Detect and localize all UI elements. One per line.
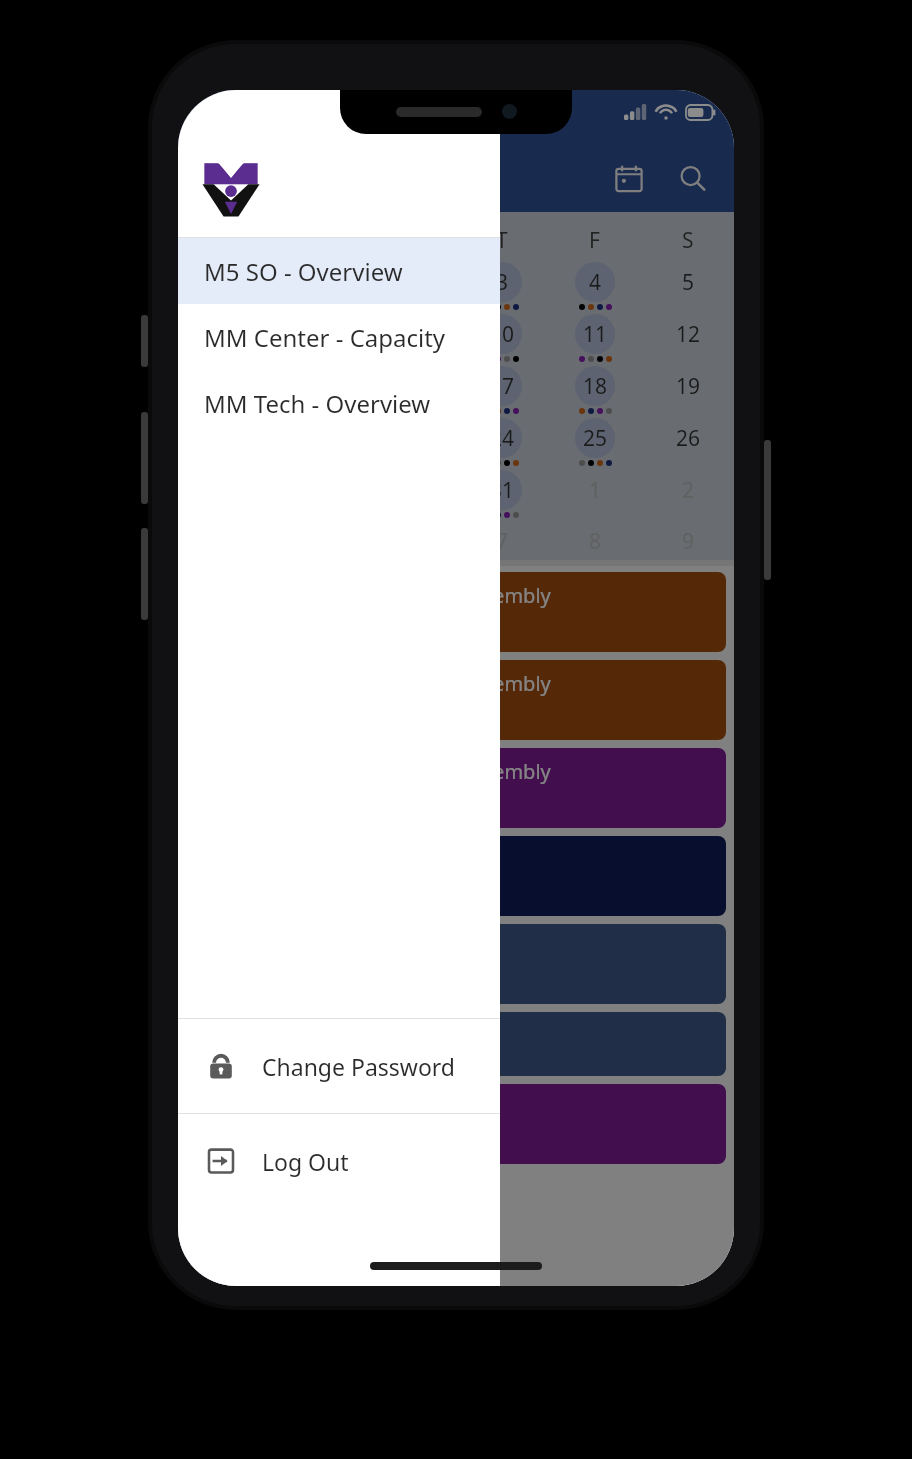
staticText: 11 bbox=[583, 320, 608, 349]
staticText: 31 bbox=[490, 476, 515, 505]
button[interactable]: 19 bbox=[668, 366, 708, 406]
staticText: 5 bbox=[682, 268, 695, 297]
button[interactable]: MM Center - Capacity bbox=[178, 304, 500, 370]
button[interactable]: 7 bbox=[482, 522, 522, 560]
staticText: 9 bbox=[682, 527, 695, 556]
button[interactable]: Mammoth Merchandising / Assembly bbox=[186, 660, 726, 740]
staticText: 12 bbox=[676, 320, 701, 349]
button[interactable]: 25 bbox=[575, 418, 615, 458]
staticText: Mammoth Merchandising / Assembly bbox=[200, 670, 551, 697]
button[interactable]: 8 bbox=[389, 314, 429, 354]
staticText: Change Password bbox=[262, 1051, 455, 1082]
staticText: 8 bbox=[589, 527, 602, 556]
button[interactable]: 4 bbox=[575, 262, 615, 302]
button[interactable]: Mammoth Merchandising / Assembly bbox=[186, 572, 726, 652]
button[interactable]: 24 bbox=[482, 418, 522, 458]
button[interactable]: Mammoth Merchandising / Assembly bbox=[186, 748, 726, 828]
button[interactable]: Project Sourcing.LLC / bbox=[186, 1084, 726, 1164]
staticText: T bbox=[310, 226, 322, 255]
staticText: 29 bbox=[212, 268, 237, 297]
button[interactable]: 29 bbox=[204, 262, 244, 302]
button[interactable]: Project / Upper Arlington, bbox=[186, 836, 726, 916]
button[interactable]: 6 bbox=[204, 314, 244, 354]
staticText: 15 bbox=[397, 372, 422, 401]
button[interactable]: 30 bbox=[296, 262, 336, 302]
button[interactable]: 15 bbox=[389, 366, 429, 406]
staticText: 24 bbox=[490, 424, 515, 453]
staticText: F bbox=[589, 226, 600, 255]
staticText: W bbox=[399, 226, 419, 255]
staticText: 6 bbox=[218, 320, 231, 349]
staticText: 2 bbox=[682, 476, 695, 505]
staticText: S bbox=[682, 226, 694, 255]
button[interactable]: 1 bbox=[389, 262, 429, 302]
staticText: 1 bbox=[589, 476, 602, 505]
staticText: 19 bbox=[676, 372, 701, 401]
staticText: 14 bbox=[304, 372, 329, 401]
button[interactable]: M5 SO - Overview bbox=[178, 238, 500, 304]
button[interactable] bbox=[186, 1012, 726, 1076]
staticText: Mammoth Merchandising / Assembly bbox=[200, 582, 551, 609]
button[interactable]: Search bbox=[666, 152, 720, 206]
button[interactable]: Project / Emilson YMCA, bbox=[186, 924, 726, 1004]
button[interactable]: 31 bbox=[482, 470, 522, 510]
staticText: Mammoth Merchandising / Assembly bbox=[200, 758, 551, 785]
staticText: Project Sourcing.LLC / bbox=[200, 1094, 405, 1121]
button[interactable]: 13 bbox=[204, 366, 244, 406]
staticText: 30 bbox=[304, 268, 329, 297]
button[interactable]: 12 bbox=[668, 314, 708, 354]
button[interactable]: 26 bbox=[668, 418, 708, 458]
button[interactable]: Log Out bbox=[178, 1114, 500, 1208]
button[interactable]: 17 bbox=[482, 366, 522, 406]
staticText: MM Center - Capacity bbox=[204, 321, 446, 354]
staticText: 3 bbox=[496, 268, 509, 297]
button[interactable]: 10 bbox=[482, 314, 522, 354]
button[interactable]: July 20 bbox=[192, 156, 309, 202]
button[interactable]: 14 bbox=[296, 366, 336, 406]
staticText: 7 bbox=[496, 527, 509, 556]
staticText: 25 bbox=[583, 424, 608, 453]
button[interactable]: 11 bbox=[575, 314, 615, 354]
staticText: 7 bbox=[310, 320, 323, 349]
button[interactable]: 5 bbox=[668, 262, 708, 302]
staticText: MM Tech - Overview bbox=[204, 387, 431, 420]
staticText: 18 bbox=[583, 372, 608, 401]
staticText: 13 bbox=[212, 372, 237, 401]
staticText: M bbox=[214, 226, 234, 255]
staticText: 26 bbox=[676, 424, 701, 453]
button[interactable]: Change Password bbox=[178, 1019, 500, 1113]
button[interactable]: 8 bbox=[575, 522, 615, 560]
staticText: 17 bbox=[490, 372, 515, 401]
button[interactable]: Calendar bbox=[602, 152, 656, 206]
staticText: M5 SO - Overview bbox=[204, 255, 403, 288]
staticText: 8 bbox=[403, 320, 416, 349]
staticText: July 20 bbox=[198, 162, 275, 196]
button[interactable]: 18 bbox=[575, 366, 615, 406]
button[interactable]: MM Tech - Overview bbox=[178, 370, 500, 436]
button[interactable]: 7 bbox=[296, 314, 336, 354]
staticText: 4 bbox=[589, 268, 602, 297]
button[interactable]: 3 bbox=[482, 262, 522, 302]
